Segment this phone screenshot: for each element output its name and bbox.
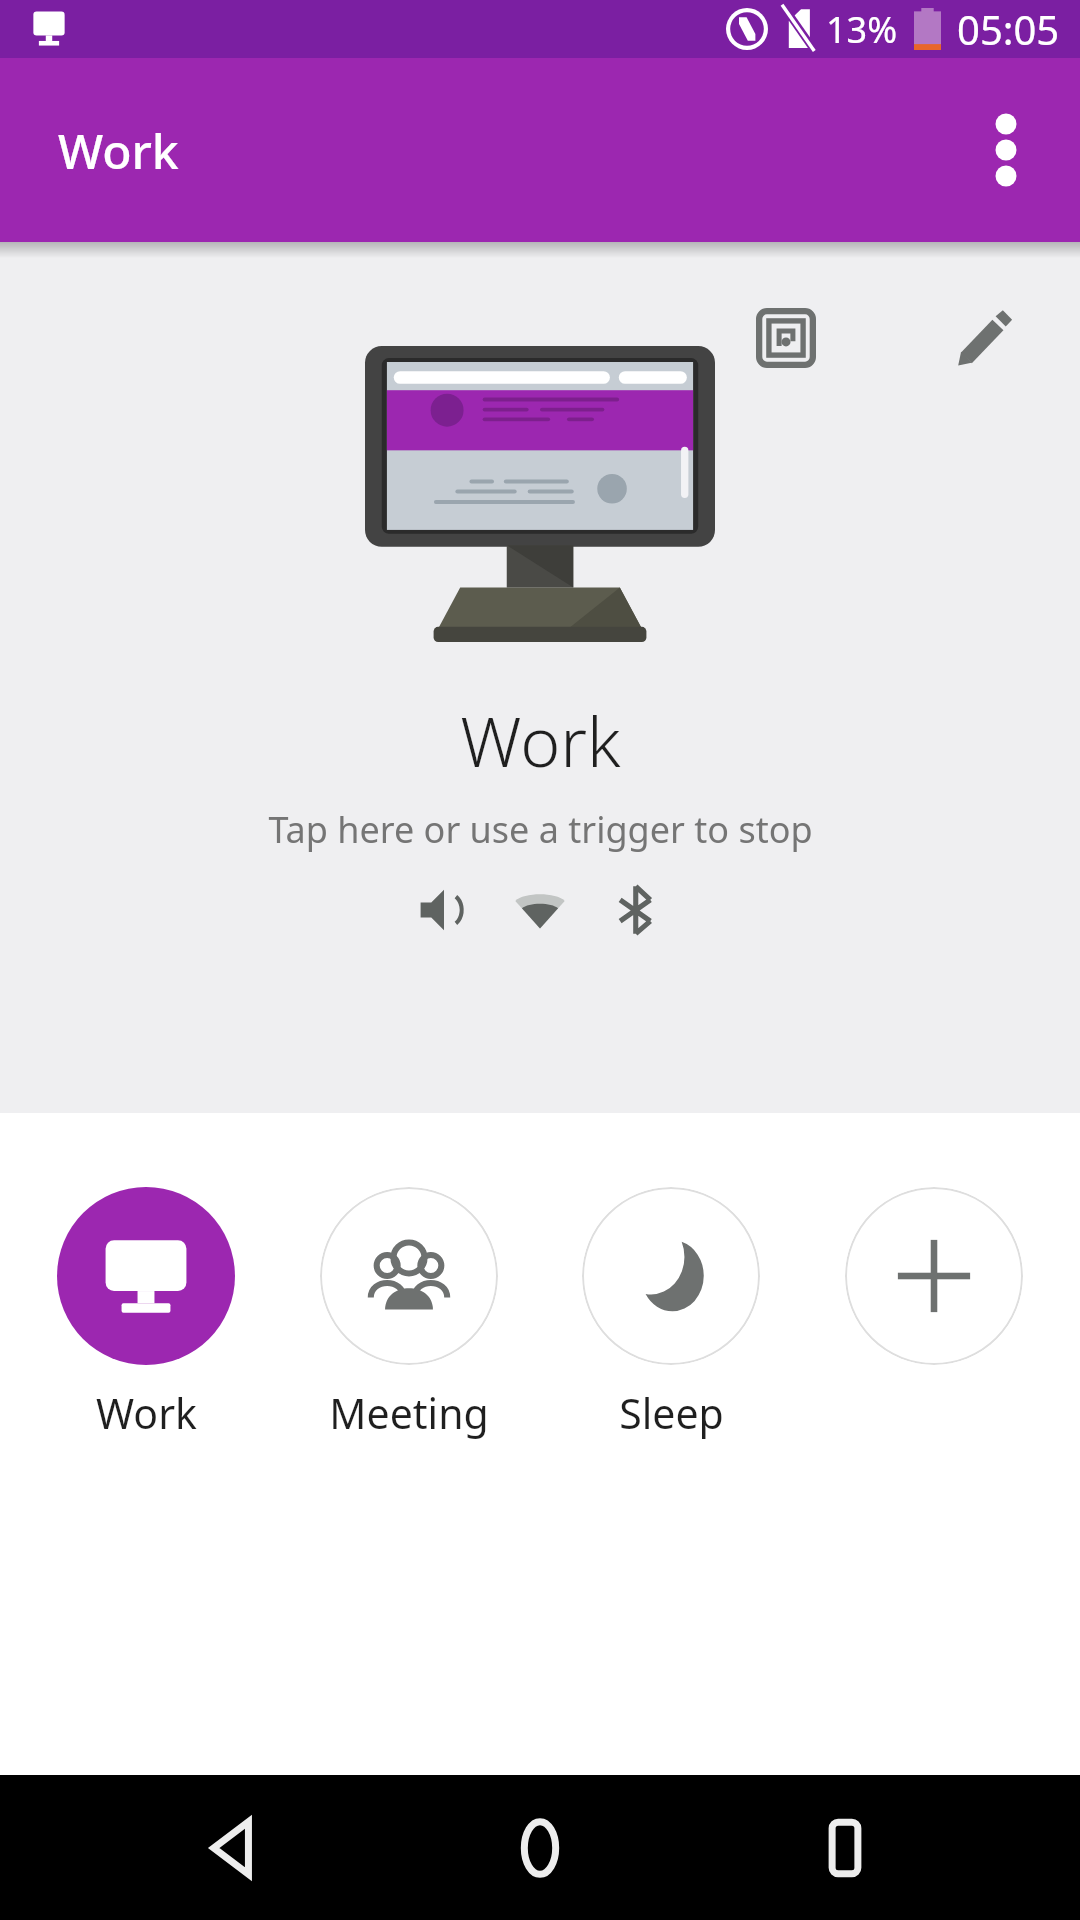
button[interactable]: NFC tag <box>0 242 1080 1113</box>
button[interactable]: Back <box>165 1778 305 1918</box>
button[interactable]: Edit <box>934 288 1034 388</box>
button[interactable]: Sleep <box>555 1187 787 1441</box>
button[interactable]: NFC tag <box>736 288 836 388</box>
staticText: Tap here or use a trigger to stop <box>268 805 813 854</box>
button[interactable]: Add profile <box>818 1187 1050 1365</box>
staticText: 13% <box>826 5 898 54</box>
staticText: Work <box>58 118 179 183</box>
staticText: Work <box>460 694 621 787</box>
button[interactable]: Meeting <box>293 1187 525 1441</box>
staticText: 05:05 <box>957 2 1060 56</box>
button[interactable]: Work <box>30 1187 262 1441</box>
button[interactable]: More options <box>956 100 1056 200</box>
button[interactable]: Recent apps <box>775 1778 915 1918</box>
button[interactable]: Home <box>470 1778 610 1918</box>
staticText: Meeting <box>329 1385 489 1441</box>
staticText: Work <box>96 1385 197 1441</box>
staticText: Sleep <box>619 1385 724 1441</box>
